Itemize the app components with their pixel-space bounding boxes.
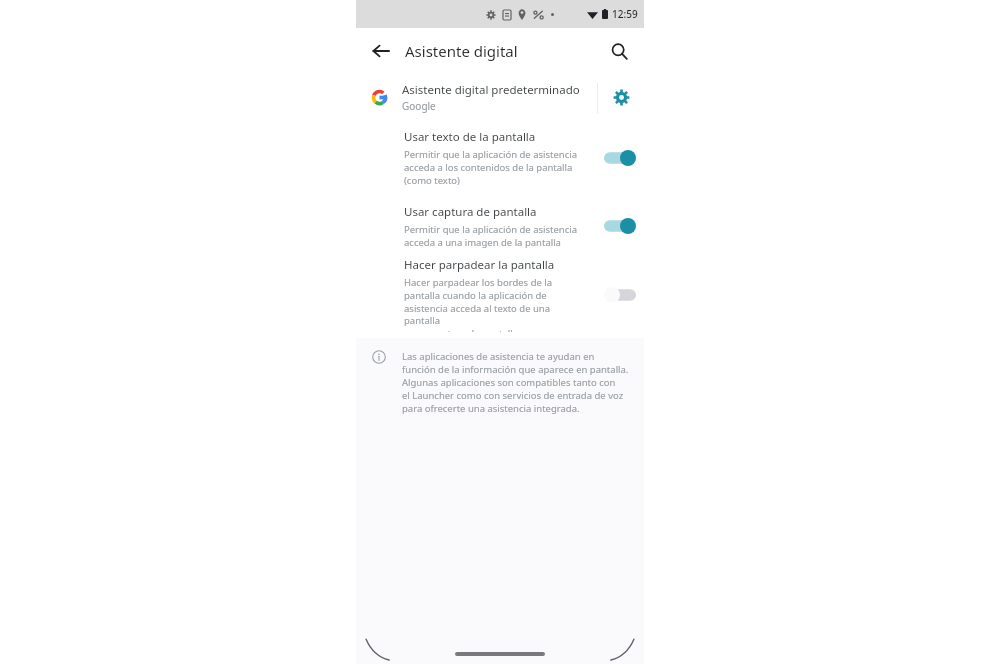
button[interactable]: Usar captura de pantalla xyxy=(356,195,644,257)
staticText: Hacer parpadear la pantalla xyxy=(404,257,555,273)
staticText: Asistente digital predeterminado xyxy=(402,82,580,98)
staticText: (como texto) xyxy=(404,174,460,187)
button[interactable]: Hacer parpadear la pantalla xyxy=(356,257,644,332)
staticText: Google xyxy=(402,99,436,113)
staticText: o una captura de pantalla xyxy=(404,327,519,332)
staticText: Permitir que la aplicación de asistencia xyxy=(404,223,578,236)
button[interactable]: Assistant settings xyxy=(598,74,644,121)
staticText: Asistente digital xyxy=(405,41,518,61)
staticText: Hacer parpadear los bordes de la xyxy=(404,276,553,289)
staticText: Algunas aplicaciones son compatibles tan… xyxy=(402,376,616,389)
button[interactable]: Usar texto de la pantalla xyxy=(356,121,644,195)
staticText: pantalla cuando la aplicación de xyxy=(404,289,547,302)
button[interactable]: Search xyxy=(602,34,636,68)
staticText: función de la información que aparece en… xyxy=(402,363,629,376)
staticText: el Launcher como con servicios de entrad… xyxy=(402,389,624,402)
staticText: asistencia acceda al texto de una pantal… xyxy=(404,302,588,327)
staticText: para ofrecerte una asistencia integrada. xyxy=(402,402,580,415)
button[interactable]: Back xyxy=(364,34,398,68)
staticText: Usar captura de pantalla xyxy=(404,204,537,220)
staticText: acceda a los contenidos de la pantalla xyxy=(404,161,573,174)
button[interactable]: Asistente digital predeterminado xyxy=(356,74,597,121)
button[interactable]: Home xyxy=(455,652,545,656)
staticText: acceda a una imagen de la pantalla xyxy=(404,236,561,249)
staticText: Usar texto de la pantalla xyxy=(404,129,536,145)
staticText: 12:59 xyxy=(612,7,638,21)
staticText: Permitir que la aplicación de asistencia xyxy=(404,148,578,161)
staticText: Las aplicaciones de asistencia te ayudan… xyxy=(402,350,595,363)
